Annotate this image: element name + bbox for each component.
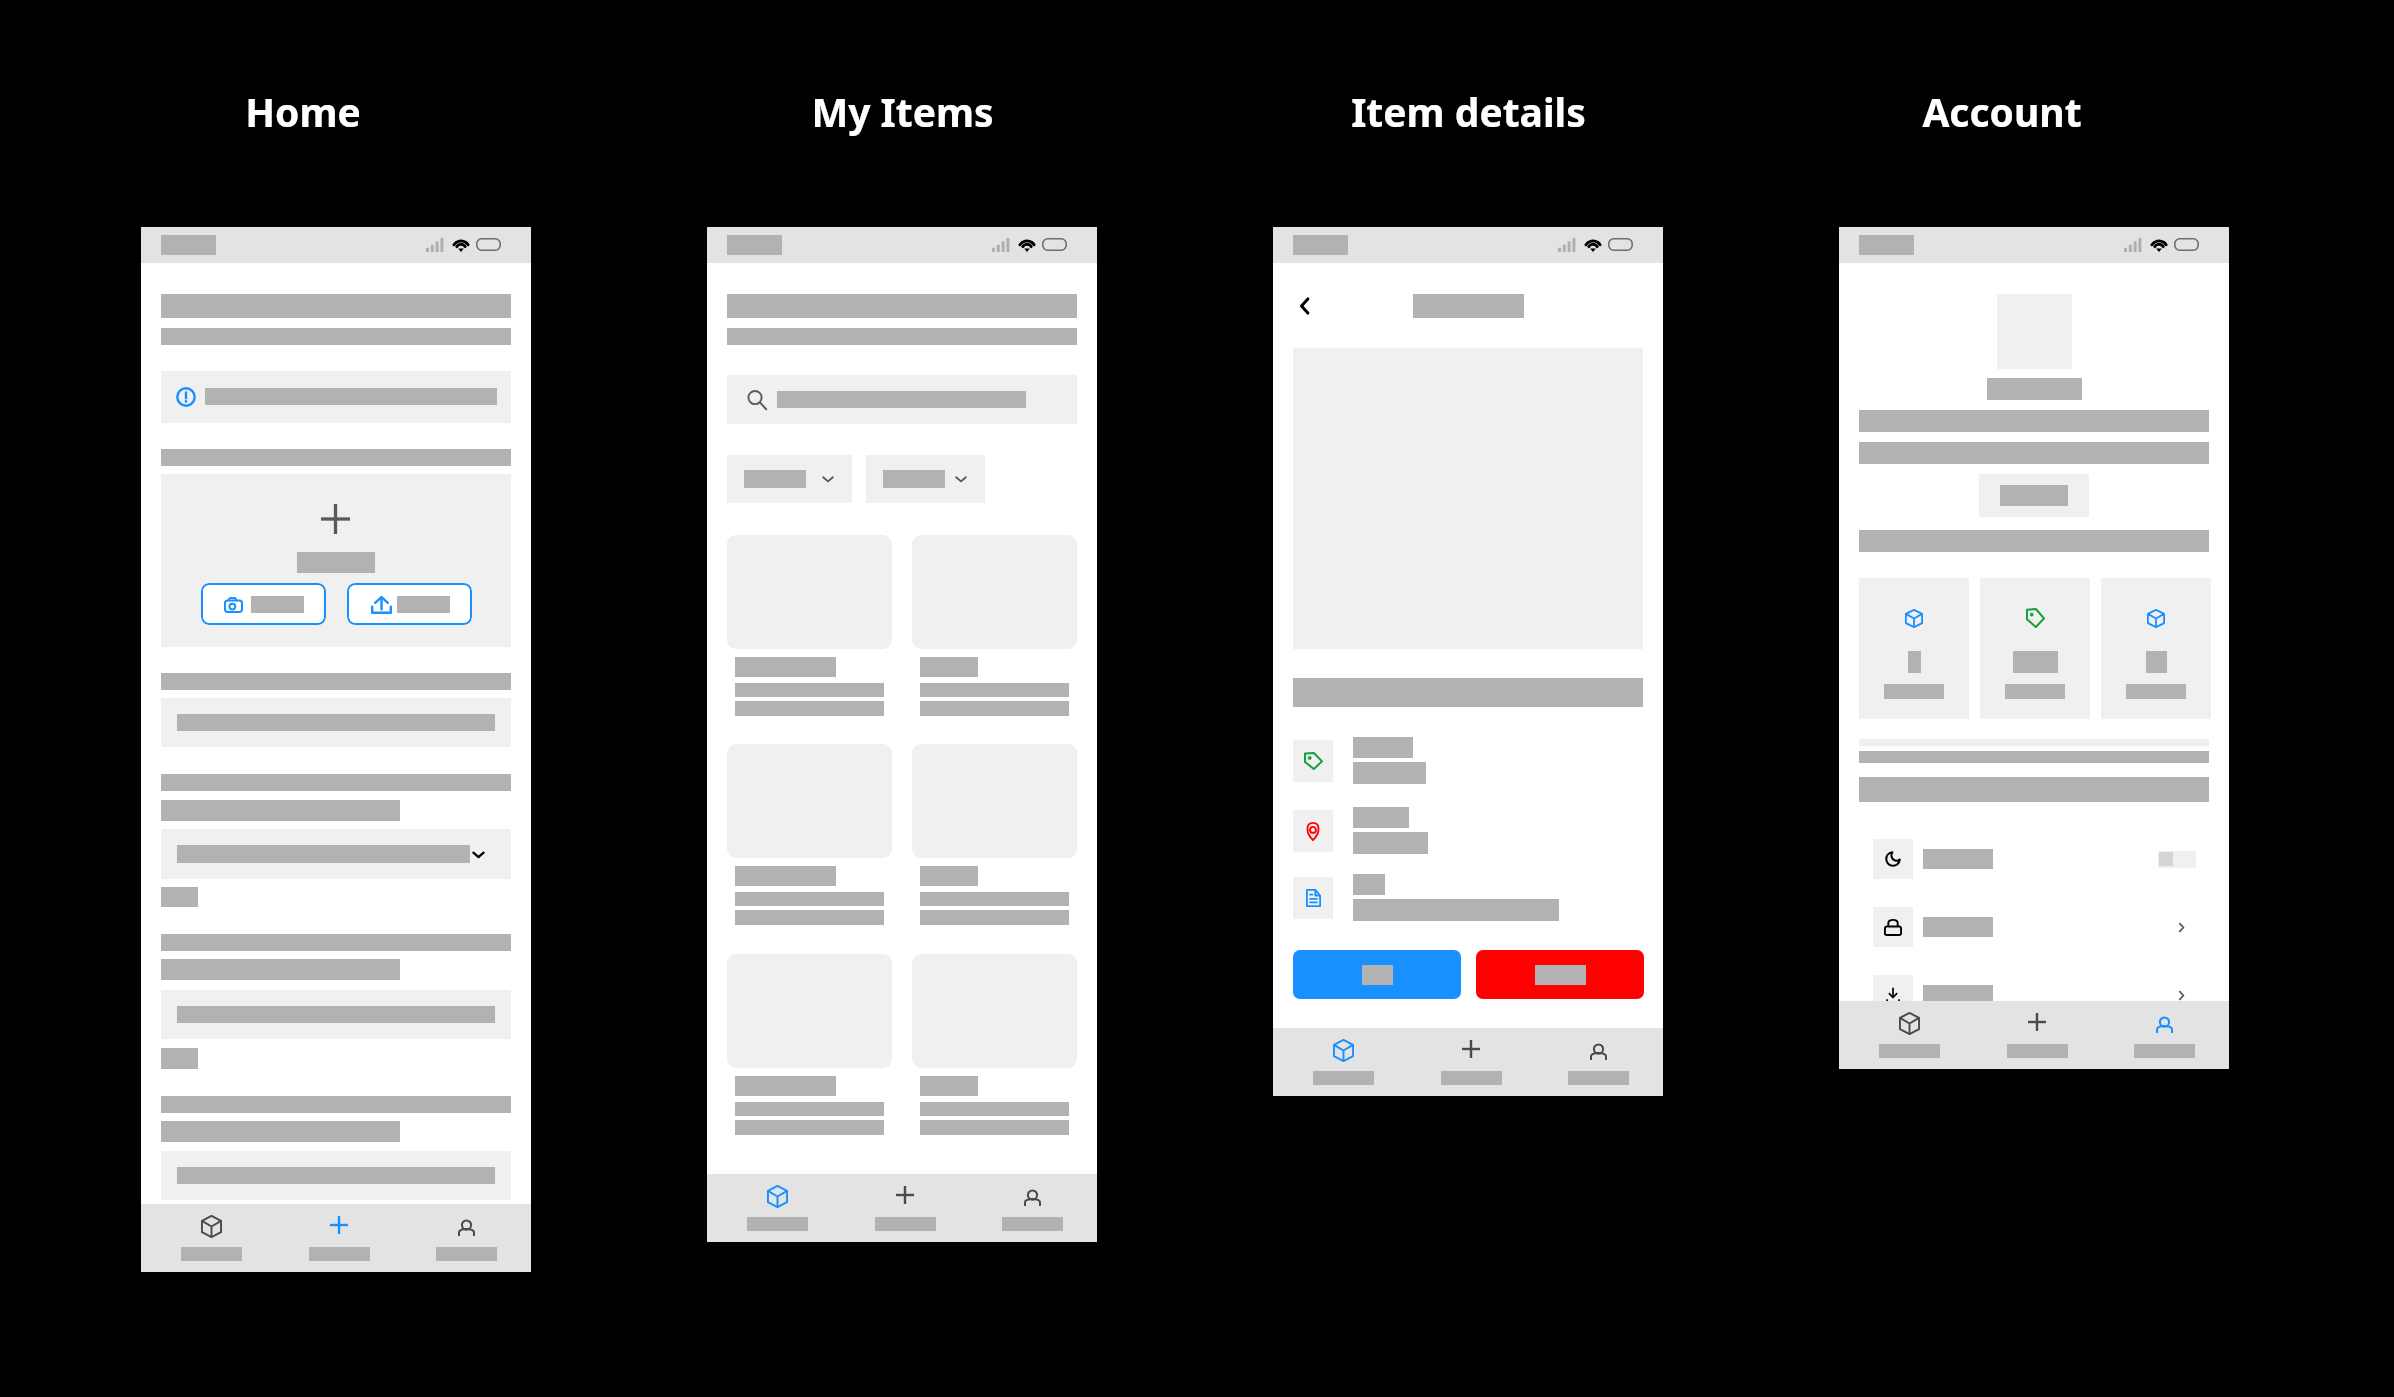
button[interactable]: Price: [1293, 736, 1623, 786]
button[interactable]: Stat: [1859, 578, 1969, 719]
button[interactable]: Item card: [727, 744, 892, 925]
button[interactable]: Item card: [912, 535, 1077, 716]
button[interactable]: Filter: [727, 455, 852, 503]
button[interactable]: Items: [169, 1204, 253, 1272]
button[interactable]: Text field: [161, 990, 511, 1039]
button[interactable]: Filter: [866, 455, 985, 503]
button[interactable]: Account: [2122, 1001, 2206, 1069]
button[interactable]: Item card: [727, 954, 892, 1135]
button[interactable]: Description: [1293, 873, 1623, 923]
staticText: My Items: [811, 85, 994, 138]
staticText: Account: [1922, 85, 2082, 138]
button[interactable]: Location: [1293, 806, 1623, 856]
button[interactable]: Dropdown: [161, 829, 511, 879]
button[interactable]: Text field: [161, 698, 511, 747]
button[interactable]: Stat: [2101, 578, 2211, 719]
button[interactable]: Delete: [1476, 950, 1644, 999]
button[interactable]: Add: [297, 1204, 381, 1272]
button[interactable]: Account: [424, 1204, 508, 1272]
button[interactable]: Item card: [912, 744, 1077, 925]
button[interactable]: Items: [1867, 1001, 1951, 1069]
staticText: Home: [245, 85, 361, 138]
button[interactable]: Add: [1429, 1028, 1513, 1096]
button[interactable]: Privacy: [1873, 907, 2195, 947]
staticText: Item details: [1351, 85, 1586, 138]
button[interactable]: Items: [735, 1174, 819, 1242]
button[interactable]: Edit profile: [1979, 474, 2089, 517]
button[interactable]: Items: [1301, 1028, 1385, 1096]
button[interactable]: Text field: [161, 1151, 511, 1200]
button[interactable]: Take photo: [201, 583, 326, 625]
button[interactable]: Item card: [727, 535, 892, 716]
button[interactable]: Account: [990, 1174, 1074, 1242]
button[interactable]: Item card: [912, 954, 1077, 1135]
button[interactable]: Account: [1556, 1028, 1640, 1096]
button[interactable]: Back: [1292, 293, 1318, 319]
button[interactable]: Upload file: [347, 583, 472, 625]
button[interactable]: Dark mode: [1873, 839, 2195, 879]
button[interactable]: Downloads: [1873, 975, 2195, 1015]
button[interactable]: Add: [1995, 1001, 2079, 1069]
button[interactable]: Search: [727, 375, 1077, 424]
button[interactable]: Primary action: [1293, 950, 1461, 999]
button[interactable]: Stat: [1980, 578, 2090, 719]
button[interactable]: Notice: [161, 371, 511, 423]
button[interactable]: Add: [863, 1174, 947, 1242]
